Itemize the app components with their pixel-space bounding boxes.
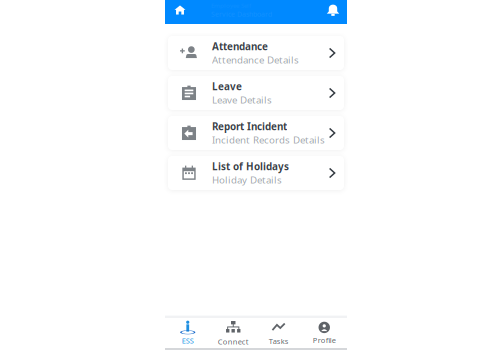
staticText: Connect [218, 336, 249, 347]
staticText: Report Incident [212, 120, 287, 133]
button[interactable]: ESS [165, 318, 210, 348]
button[interactable]: Notifications [322, 0, 344, 20]
staticText: Service Dashboard [211, 9, 272, 19]
staticText: ESS [182, 335, 194, 346]
staticText: Holiday Details [212, 173, 282, 186]
button[interactable]: Home [169, 0, 191, 20]
button[interactable]: Connect [210, 318, 256, 348]
staticText: List of Holidays [212, 160, 289, 173]
staticText: Attendance [212, 40, 268, 53]
button[interactable]: List of Holidays [168, 156, 344, 190]
button[interactable]: Report Incident [168, 116, 344, 150]
staticText: Leave [212, 80, 242, 93]
staticText: Tasks [269, 336, 289, 346]
staticText: Incident Records Details [212, 133, 325, 146]
button[interactable]: Profile [301, 318, 347, 348]
button[interactable]: Tasks [256, 318, 301, 348]
button[interactable]: Leave [168, 76, 344, 110]
button[interactable]: Attendance [168, 36, 344, 70]
staticText: Attendance Details [212, 53, 299, 66]
staticText: Leave Details [212, 93, 272, 106]
staticText: Profile [313, 335, 336, 345]
